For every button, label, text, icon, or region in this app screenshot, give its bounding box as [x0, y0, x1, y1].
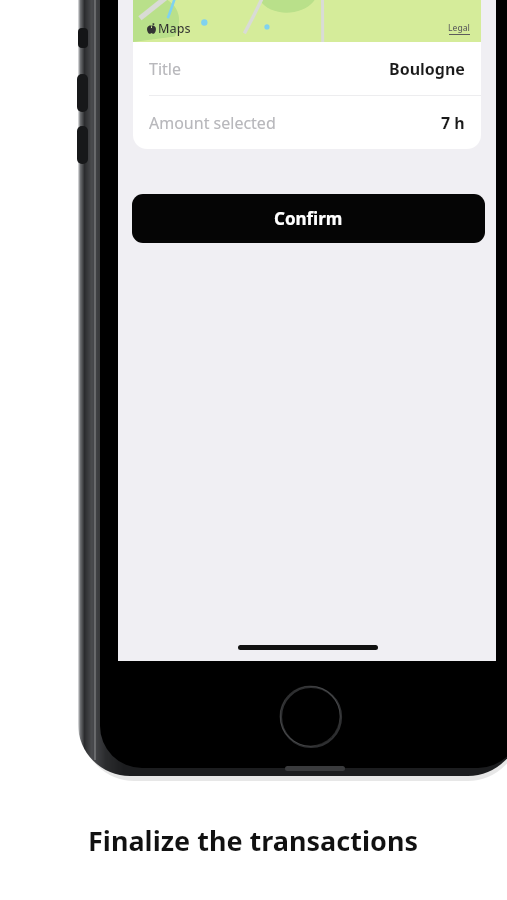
- staticText: Confirm: [274, 207, 343, 230]
- staticText: Amount selected: [149, 112, 276, 134]
- staticText: Finalize the transactions: [88, 822, 418, 859]
- staticText: Maps: [158, 20, 191, 37]
- staticText: Boulogne: [389, 58, 465, 80]
- staticText: Title: [149, 58, 181, 80]
- button[interactable]: Legal: [448, 22, 470, 35]
- button[interactable]: Amount selected: [133, 96, 481, 149]
- staticText: Legal: [448, 22, 470, 34]
- staticText: 7 h: [441, 112, 465, 134]
- button[interactable]: Confirm: [132, 194, 485, 243]
- button[interactable]: Title: [133, 42, 481, 95]
